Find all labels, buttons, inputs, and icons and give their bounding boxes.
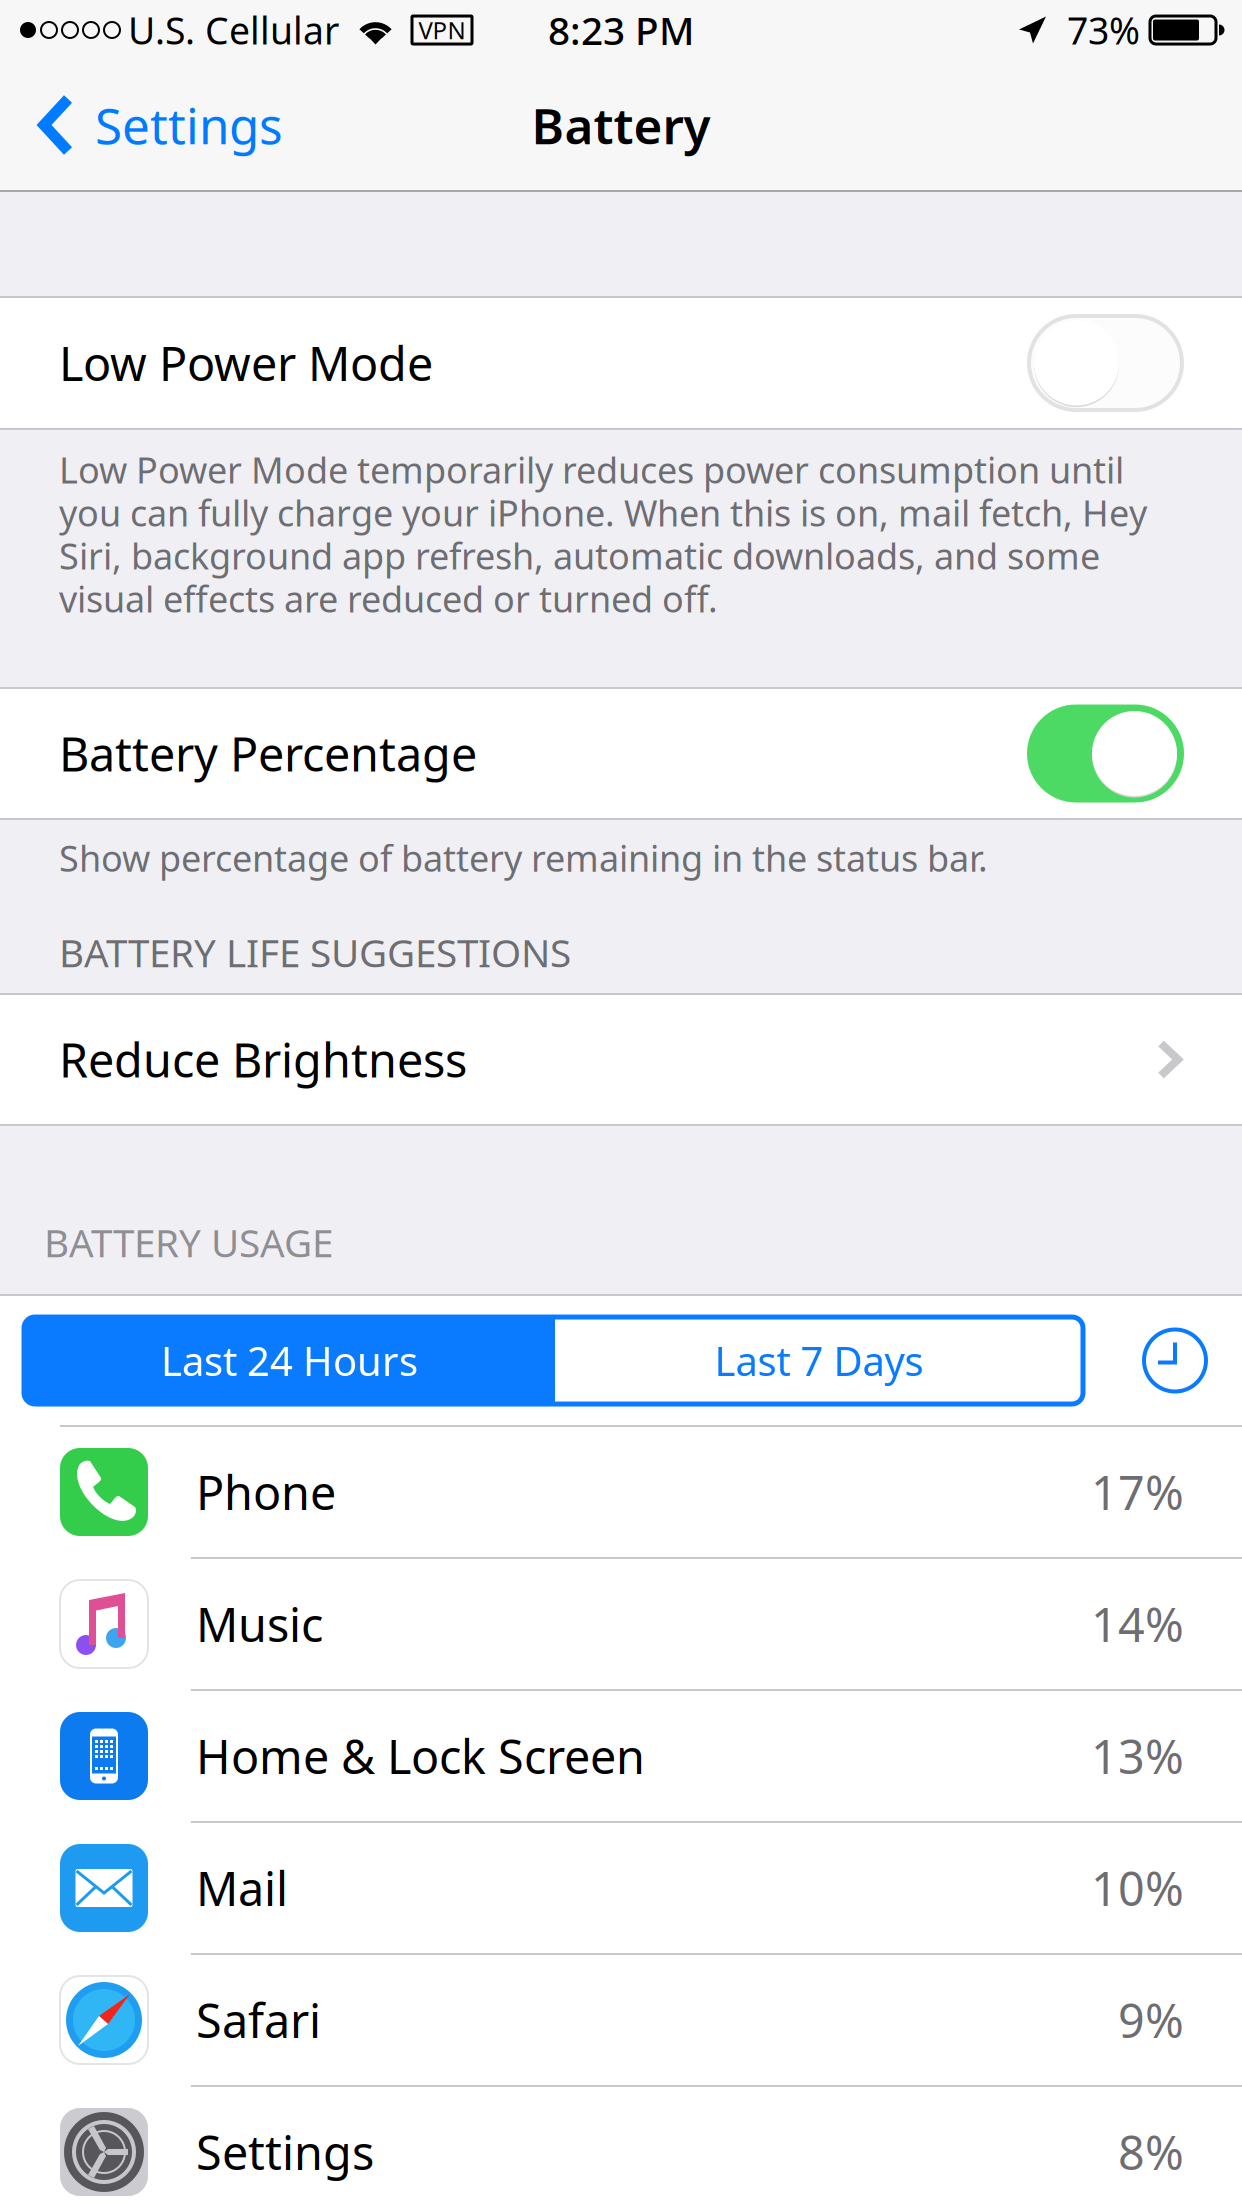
button[interactable]: Mail (0, 1821, 1242, 1953)
staticText: 73% (1067, 5, 1140, 55)
staticText: 10% (1091, 1857, 1184, 1919)
staticText: visual effects are reduced or turned off… (59, 575, 718, 622)
staticText: 8:23 PM (548, 4, 694, 56)
staticText: Music (196, 1593, 323, 1655)
button[interactable]: Battery usage by time (1124, 1329, 1242, 1391)
staticText: VPN (418, 14, 465, 46)
staticText: Show percentage of battery remaining in … (59, 834, 988, 882)
staticText: Battery Percentage (59, 722, 477, 784)
staticText: Home & Lock Screen (196, 1725, 645, 1787)
staticText: Settings (196, 2121, 374, 2183)
staticText: Low Power Mode (59, 332, 433, 394)
button[interactable]: Settings (0, 60, 307, 190)
button[interactable]: Music (0, 1557, 1242, 1689)
staticText: BATTERY LIFE SUGGESTIONS (59, 927, 571, 978)
staticText: Mail (196, 1857, 288, 1919)
staticText: BATTERY USAGE (44, 1217, 333, 1268)
staticText: U.S. Cellular (128, 5, 339, 55)
button[interactable]: Reduce Brightness (0, 995, 1242, 1124)
staticText: 9% (1118, 1989, 1184, 2051)
staticText: you can fully charge your iPhone. When t… (59, 489, 1147, 536)
staticText: 13% (1091, 1725, 1184, 1787)
button[interactable]: Safari (0, 1953, 1242, 2085)
staticText: Low Power Mode temporarily reduces power… (59, 446, 1124, 493)
staticText: Last 24 Hours (161, 1334, 418, 1387)
staticText: Reduce Brightness (59, 1028, 467, 1090)
staticText: 17% (1091, 1461, 1184, 1523)
button[interactable]: Last 24 Hours (24, 1317, 555, 1404)
staticText: 8% (1118, 2121, 1184, 2183)
button[interactable]: Settings (0, 2085, 1242, 2208)
staticText: 14% (1091, 1593, 1184, 1655)
staticText: Safari (196, 1989, 321, 2051)
button[interactable]: Last 7 Days (555, 1317, 1083, 1404)
staticText: Phone (196, 1461, 336, 1523)
staticText: Battery (531, 92, 710, 158)
button[interactable]: Home & Lock Screen (0, 1689, 1242, 1821)
button[interactable]: Battery Percentage (0, 689, 1242, 818)
button[interactable]: Low Power Mode (0, 298, 1242, 428)
button[interactable]: Phone (0, 1425, 1242, 1557)
staticText: Last 7 Days (714, 1334, 923, 1387)
staticText: Settings (95, 92, 283, 158)
staticText: Siri, background app refresh, automatic … (59, 532, 1100, 579)
